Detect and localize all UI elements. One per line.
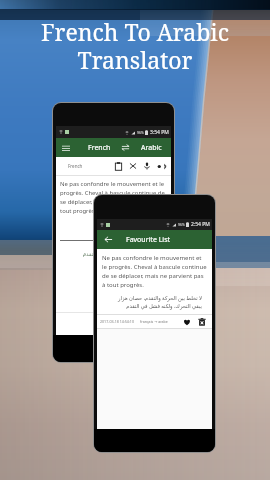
staticText: French xyxy=(88,143,111,153)
staticText: Ne pas confondre le mouvement et le prog… xyxy=(102,254,207,289)
staticText: 96% xyxy=(178,222,185,227)
staticText: français → arabe xyxy=(140,319,168,324)
button[interactable]: Back xyxy=(97,230,212,249)
button[interactable]: Favourite xyxy=(183,318,191,326)
button[interactable]: French xyxy=(56,138,171,157)
button[interactable]: Clear xyxy=(129,162,137,170)
staticText: 2:54 PM xyxy=(191,221,210,228)
staticText: لا تخلط بين الحركة والتقدم xyxy=(56,250,143,257)
staticText: Favourite List xyxy=(126,235,171,245)
button[interactable]: Arabic xyxy=(56,313,171,335)
button[interactable]: Voice input xyxy=(143,162,151,170)
other: Back xyxy=(104,235,113,244)
staticText: 2017-03-18 14:54:10 xyxy=(100,319,134,324)
button[interactable]: Listen xyxy=(157,162,166,171)
button[interactable]: Paste xyxy=(114,162,123,171)
staticText: لا تخلط بين الحركة والتقدم، حصان هزاز xyxy=(107,294,202,301)
staticText: 96% xyxy=(137,130,144,135)
staticText: 3:54 PM xyxy=(150,129,169,136)
staticText: Ne pas confondre le mouvement et le prog… xyxy=(60,180,167,214)
staticText: French To Arabic Translator xyxy=(0,16,270,76)
staticText: Arabic xyxy=(145,321,159,327)
button[interactable]: Delete xyxy=(198,318,206,326)
staticText: يبقي التحرك، ولكنه فشل في التقدم xyxy=(107,302,202,309)
staticText: French xyxy=(68,163,83,169)
staticText: Arabic xyxy=(141,143,162,153)
button[interactable]: Ne pas confondre le mouvement et le prog… xyxy=(97,249,212,329)
